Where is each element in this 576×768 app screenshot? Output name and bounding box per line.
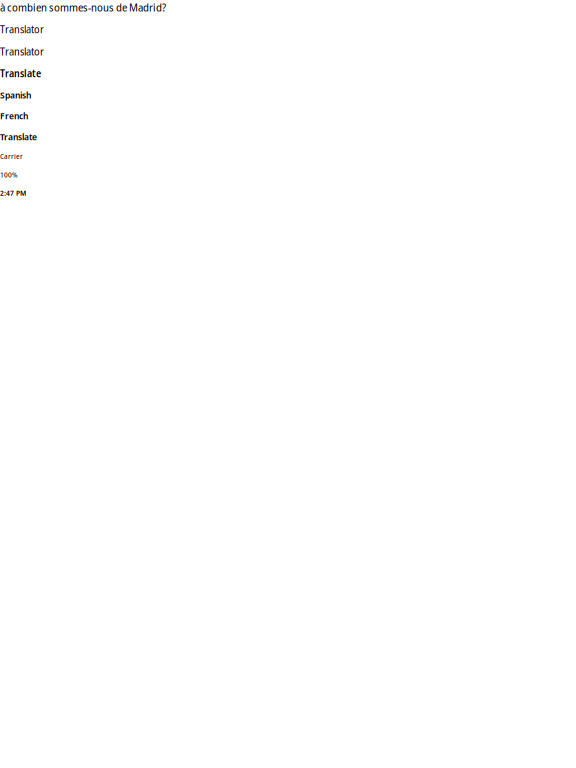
staticText: Translate (0, 67, 41, 80)
staticText: Translator (0, 44, 44, 59)
staticText: 100% (0, 169, 18, 180)
staticText: Translate (0, 130, 37, 143)
staticText: Carrier (0, 151, 23, 161)
staticText: Translator (0, 22, 44, 36)
staticText: Spanish (0, 88, 31, 101)
staticText: French (0, 109, 28, 122)
staticText: 2:47 PM (0, 188, 26, 198)
staticText: à combien sommes-nous de Madrid? (0, 0, 166, 14)
